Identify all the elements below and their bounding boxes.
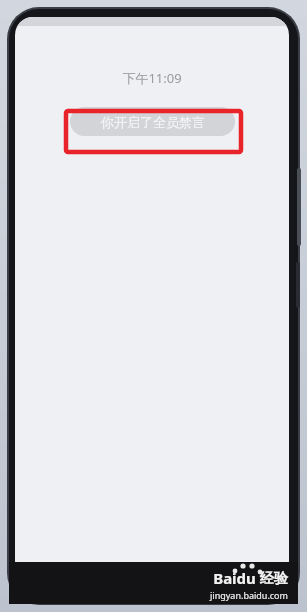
button[interactable]: 你开启了全员禁言 [70, 107, 235, 136]
staticText: 经验 [260, 570, 288, 588]
staticText: 你开启了全员禁言 [101, 114, 205, 130]
staticText: 下午11:09 [122, 69, 182, 87]
staticText: jingyan.baidu.com [210, 589, 288, 601]
staticText: Baidu [213, 568, 256, 588]
